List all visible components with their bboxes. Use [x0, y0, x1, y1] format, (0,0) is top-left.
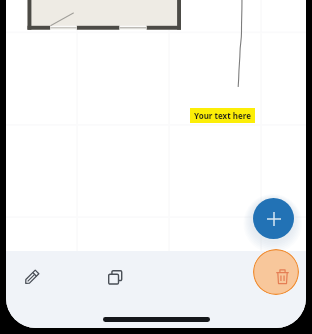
button[interactable]: Delete	[253, 249, 299, 295]
button[interactable]: Duplicate	[101, 263, 129, 291]
staticText: Your text here	[194, 110, 251, 121]
button[interactable]: Add	[253, 198, 294, 239]
button[interactable]: Your text here	[190, 108, 255, 123]
button[interactable]: Edit	[17, 263, 45, 291]
